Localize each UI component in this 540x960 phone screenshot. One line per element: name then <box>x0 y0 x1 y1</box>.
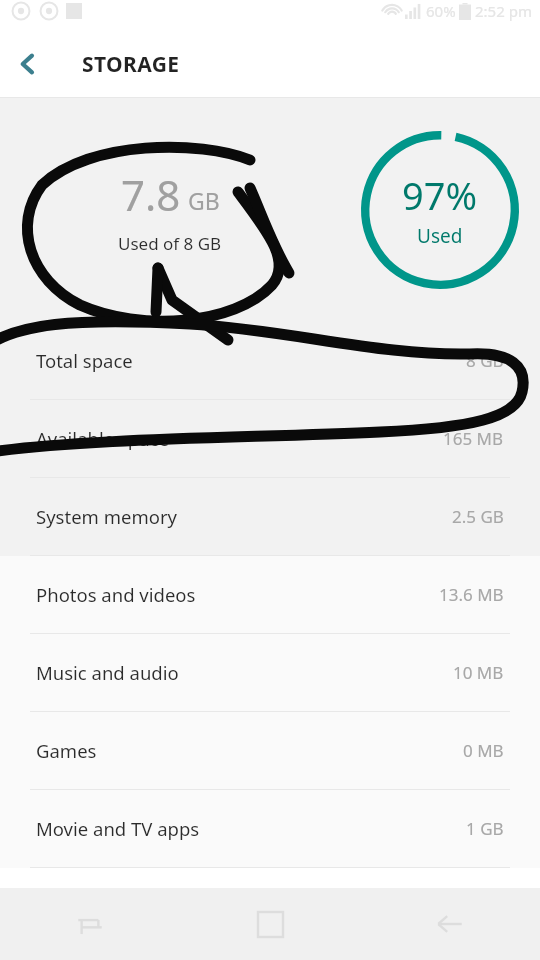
staticText: 1 GB <box>466 817 504 840</box>
staticText: 7.8 <box>121 166 181 223</box>
staticText: 8 GB <box>466 349 504 372</box>
staticText: 60% <box>426 1 456 21</box>
button[interactable]: Available space <box>0 400 540 477</box>
button[interactable]: System memory <box>0 478 540 555</box>
button[interactable]: Music and audio <box>0 634 540 711</box>
staticText: Total space <box>36 348 133 373</box>
staticText: 97% <box>402 169 478 221</box>
staticText: 2.5 GB <box>452 505 504 528</box>
staticText: GB <box>188 185 220 216</box>
staticText: 10 MB <box>453 661 504 684</box>
staticText: System memory <box>36 504 177 529</box>
staticText: Games <box>36 738 97 763</box>
staticText: Used <box>417 223 463 249</box>
staticText: 2:52 pm <box>475 1 532 21</box>
button[interactable]: Movie and TV apps <box>0 790 540 867</box>
staticText: Photos and videos <box>36 582 196 607</box>
button[interactable]: Photos and videos <box>0 556 540 633</box>
staticText: Movie and TV apps <box>36 816 200 841</box>
staticText: 13.6 MB <box>439 583 504 606</box>
staticText: Music and audio <box>36 660 179 685</box>
button[interactable]: Games <box>0 712 540 789</box>
staticText: STORAGE <box>82 50 180 79</box>
staticText: Used of 8 GB <box>118 232 222 255</box>
staticText: 0 MB <box>463 739 504 762</box>
button[interactable]: Back <box>0 36 56 92</box>
staticText: Available space <box>36 426 169 451</box>
staticText: 165 MB <box>443 427 504 450</box>
button[interactable]: Total space <box>0 322 540 399</box>
